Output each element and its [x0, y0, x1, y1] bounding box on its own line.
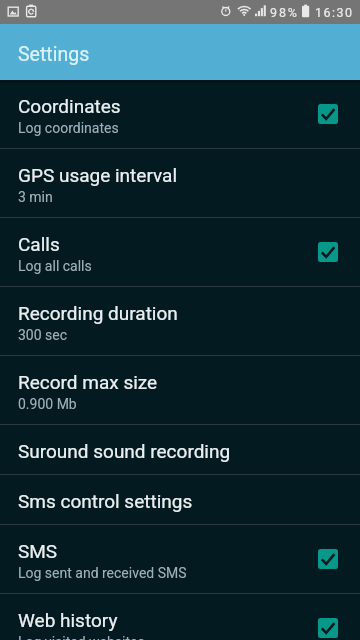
staticText: Suround sound recording [18, 440, 231, 462]
button[interactable]: Web history [0, 594, 360, 640]
staticText: Web history [18, 609, 118, 631]
staticText: 300 sec [18, 327, 68, 343]
staticText: 0.900 Mb [18, 396, 77, 412]
button[interactable]: GPS usage interval [0, 149, 360, 218]
button[interactable]: Toggle Web history [318, 618, 338, 638]
button[interactable]: Record max size [0, 356, 360, 425]
button[interactable]: Recording duration [0, 287, 360, 356]
staticText: 98% [270, 5, 299, 20]
button[interactable]: Sms control settings [0, 475, 360, 525]
button[interactable]: Toggle Calls [318, 242, 338, 262]
staticText: Sms control settings [18, 490, 193, 512]
staticText: Log visited websites [18, 634, 145, 640]
staticText: Record max size [18, 371, 158, 393]
staticText: Settings [18, 43, 90, 66]
staticText: 16:30 [315, 5, 354, 20]
staticText: Log all calls [18, 258, 92, 274]
staticText: 3 min [18, 189, 53, 205]
staticText: SMS [18, 540, 58, 562]
staticText: Coordinates [18, 95, 121, 117]
staticText: Recording duration [18, 302, 178, 324]
button[interactable]: SMS [0, 525, 360, 594]
staticText: Calls [18, 233, 60, 255]
button[interactable]: Suround sound recording [0, 425, 360, 475]
button[interactable]: Toggle Coordinates [318, 104, 338, 124]
button[interactable]: Calls [0, 218, 360, 287]
staticText: Log sent and received SMS [18, 565, 187, 581]
button[interactable]: Toggle SMS [318, 549, 338, 569]
button[interactable]: Coordinates [0, 80, 360, 149]
staticText: GPS usage interval [18, 164, 178, 186]
staticText: Log coordinates [18, 120, 119, 136]
